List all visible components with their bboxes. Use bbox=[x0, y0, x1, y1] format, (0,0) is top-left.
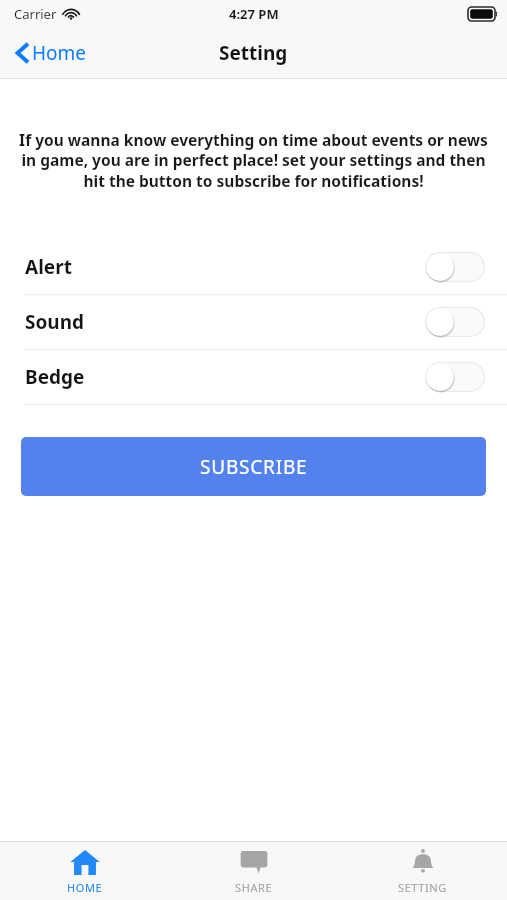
staticText: HOME bbox=[67, 880, 103, 895]
staticText: Home bbox=[32, 40, 87, 66]
button[interactable]: Toggle bbox=[425, 362, 485, 392]
button[interactable]: Toggle bbox=[425, 252, 485, 282]
staticText: If you wanna know everything on time abo… bbox=[19, 129, 488, 192]
button[interactable]: Bedge bbox=[0, 350, 507, 404]
staticText: Bedge bbox=[25, 364, 425, 390]
staticText: Carrier bbox=[14, 5, 57, 23]
button[interactable]: Toggle bbox=[425, 307, 485, 337]
staticText: Setting bbox=[219, 40, 288, 66]
button[interactable]: HOME bbox=[0, 842, 169, 900]
staticText: SHARE bbox=[235, 880, 273, 895]
staticText: SETTING bbox=[398, 880, 447, 895]
button[interactable]: Sound bbox=[0, 295, 507, 349]
staticText: 4:27 PM bbox=[229, 5, 279, 23]
staticText: Sound bbox=[25, 309, 425, 335]
button[interactable]: SETTING bbox=[338, 842, 507, 900]
button[interactable]: SUBSCRIBE bbox=[21, 437, 486, 496]
button[interactable]: Home bbox=[10, 36, 93, 70]
button[interactable]: Alert bbox=[0, 240, 507, 294]
staticText: SUBSCRIBE bbox=[200, 454, 308, 480]
staticText: Alert bbox=[25, 254, 425, 280]
button[interactable]: SHARE bbox=[169, 842, 338, 900]
